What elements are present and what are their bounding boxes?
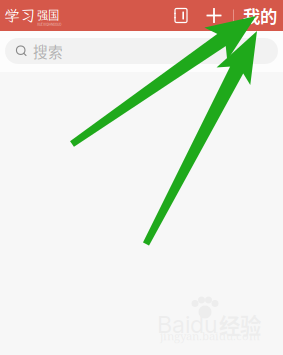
- staticText: XUEXIQIANGGUO: [37, 23, 61, 27]
- button[interactable]: 学习: [0, 5, 61, 26]
- staticText: 我的: [243, 3, 277, 28]
- staticText: 强国: [37, 6, 59, 23]
- button[interactable]: Learning log: [172, 6, 190, 24]
- staticText: 搜索: [33, 40, 63, 62]
- staticText: 经验: [219, 309, 261, 340]
- button[interactable]: Add: [205, 6, 223, 24]
- staticText: 学习: [4, 5, 36, 26]
- staticText: Baidu: [157, 310, 218, 338]
- button[interactable]: 我的: [234, 3, 277, 28]
- staticText: jingyan.baidu.com: [160, 328, 260, 344]
- button[interactable]: 搜索: [5, 38, 278, 64]
